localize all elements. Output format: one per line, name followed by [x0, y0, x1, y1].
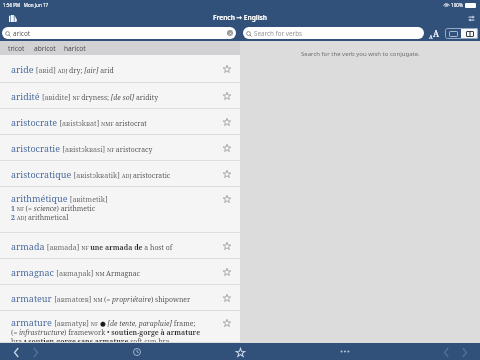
button[interactable]: armagnac [aʀmaɲak] NM Armagnac	[0, 259, 240, 285]
button[interactable]: More	[337, 344, 352, 359]
staticText: aristocrate [aʀistɔkʀat] NMF aristocrat	[11, 116, 214, 128]
button[interactable]: Library	[6, 11, 20, 25]
staticText: tricot	[8, 44, 25, 53]
staticText: aridité [aʀidite] NF dryness; [de sol] a…	[11, 90, 214, 102]
button[interactable]: aridité [aʀidite] NF dryness; [de sol] a…	[0, 83, 240, 109]
button[interactable]: Back	[439, 345, 453, 359]
button[interactable]: Favourites	[233, 345, 247, 359]
button[interactable]: Swap languages	[465, 12, 477, 24]
staticText: armagnac [aʀmaɲak] NM Armagnac	[11, 266, 214, 278]
staticText: abricot	[34, 44, 56, 53]
button[interactable]: Clear	[227, 30, 233, 36]
button[interactable]: aristocratique [aʀistɔkʀatik] ADJ aristo…	[0, 161, 240, 187]
staticText: 100%	[451, 2, 463, 8]
button[interactable]: Add to favourites	[221, 90, 233, 102]
button[interactable]: Add to favourites	[221, 142, 233, 154]
staticText: bra • soutien-gorge sans armature soft-c…	[11, 337, 170, 343]
button[interactable]: Back	[9, 345, 23, 359]
button[interactable]: Add to favourites	[221, 116, 233, 128]
button[interactable]: abricot	[33, 44, 57, 53]
staticText: aristocratie [aʀistɔkʀasi] NF aristocrac…	[11, 142, 214, 154]
button[interactable]: armateur [aʀmatœʀ] NM (= propriétaire) s…	[0, 285, 240, 311]
staticText: 1 NF (= science) arithmetic	[11, 204, 96, 213]
staticText: Search for verbs	[254, 29, 303, 38]
staticText: armada [aʀmada] NF une armada de a host …	[11, 240, 214, 252]
button[interactable]: aricot	[2, 27, 236, 39]
button[interactable]: Add to favourites	[221, 193, 233, 205]
staticText: armature [aʀmatyʀ] NF ● [de tente, parap…	[11, 316, 196, 328]
staticText: aristocratique [aʀistɔkʀatik] ADJ aristo…	[11, 168, 214, 180]
button[interactable]: Forward	[28, 345, 42, 359]
staticText: 1:56 PM Mon Jun 17	[3, 2, 49, 8]
button[interactable]: Add to favourites	[221, 63, 233, 75]
staticText: A	[433, 28, 439, 40]
button[interactable]: Single pane	[445, 28, 461, 39]
button[interactable]: aristocrate [aʀistɔkʀat] NMF aristocrat	[0, 109, 240, 135]
button[interactable]: Add to favourites	[221, 168, 233, 180]
staticText: French → English	[213, 13, 268, 22]
button[interactable]: tricot	[7, 44, 26, 53]
button[interactable]: Forward	[457, 345, 471, 359]
button[interactable]: Add to favourites	[221, 317, 233, 329]
staticText: aricot	[13, 29, 31, 38]
staticText: Search for the verb you wish to conjugat…	[301, 50, 420, 58]
button[interactable]: Text size	[427, 27, 441, 40]
button[interactable]: Add to favourites	[221, 292, 233, 304]
button[interactable]: Dual pane	[461, 28, 478, 39]
button[interactable]: aristocratie [aʀistɔkʀasi] NF aristocrac…	[0, 135, 240, 161]
staticText: (= infrastructure) framework • soutien-g…	[11, 328, 214, 337]
staticText: 2 ADJ arithmetical	[11, 213, 69, 222]
button[interactable]: Add to favourites	[221, 266, 233, 278]
button[interactable]: Search for verbs	[243, 27, 424, 39]
staticText: aride [aʀid] ADJ dry; [air] arid	[11, 63, 214, 75]
button[interactable]: Add to favourites	[221, 240, 233, 252]
staticText: A	[429, 33, 433, 40]
staticText: arithmétique [aʀitmetik]	[11, 192, 108, 204]
button[interactable]: haricot	[63, 44, 87, 53]
button[interactable]: arithmétique [aʀitmetik]	[0, 187, 240, 233]
button[interactable]: aride [aʀid] ADJ dry; [air] arid	[0, 55, 240, 83]
button[interactable]: armature [aʀmatyʀ] NF ● [de tente, parap…	[0, 311, 240, 343]
staticText: armateur [aʀmatœʀ] NM (= propriétaire) s…	[11, 292, 214, 304]
button[interactable]: History	[130, 345, 144, 359]
button[interactable]: armada [aʀmada] NF une armada de a host …	[0, 233, 240, 259]
staticText: haricot	[64, 44, 86, 53]
